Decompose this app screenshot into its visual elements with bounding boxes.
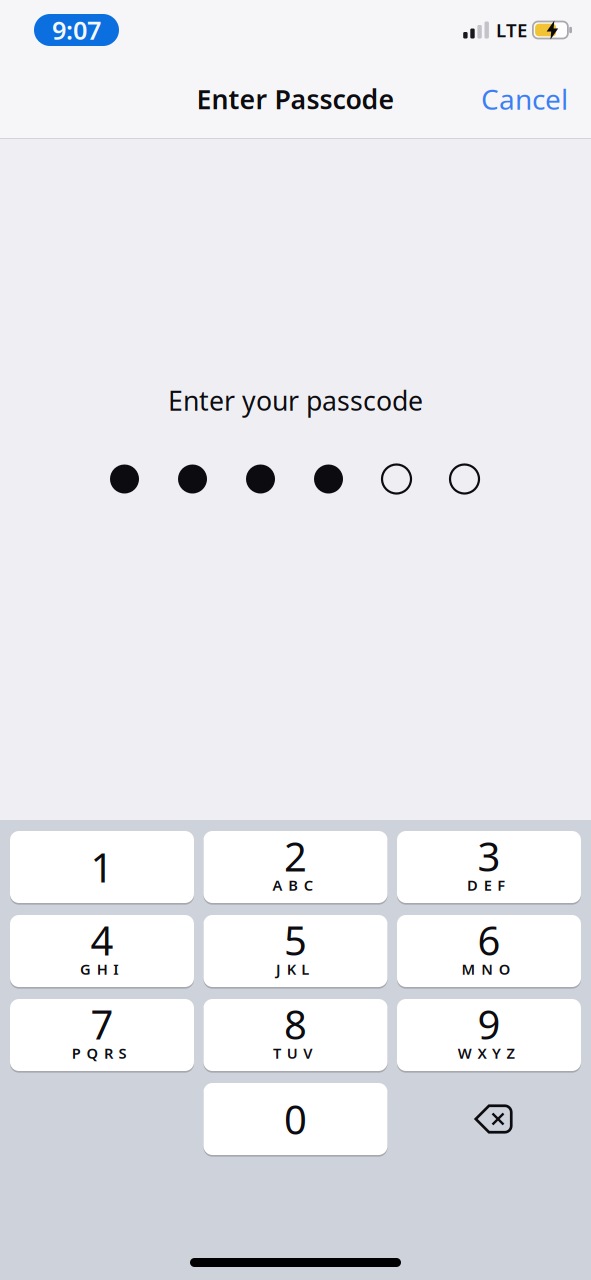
staticText: DEF bbox=[467, 875, 505, 895]
button[interactable]: 2 bbox=[203, 831, 387, 903]
staticText: 3 bbox=[477, 829, 500, 882]
button[interactable]: 0 bbox=[203, 1083, 387, 1155]
staticText: Enter your passcode bbox=[168, 383, 423, 418]
staticText: 6 bbox=[477, 913, 500, 966]
staticText: 5 bbox=[284, 913, 307, 966]
staticText: ABC bbox=[273, 875, 313, 895]
staticText: 9 bbox=[477, 997, 500, 1050]
staticText: PQRS bbox=[72, 1043, 127, 1063]
button[interactable]: 7 bbox=[10, 999, 194, 1071]
button[interactable]: Delete bbox=[397, 1083, 581, 1155]
button[interactable]: 1 bbox=[10, 831, 194, 903]
button[interactable]: 6 bbox=[397, 915, 581, 987]
staticText: 8 bbox=[284, 997, 307, 1050]
staticText: GHI bbox=[80, 959, 118, 979]
staticText: WXYZ bbox=[458, 1043, 515, 1063]
button[interactable]: 5 bbox=[203, 915, 387, 987]
staticText: JKL bbox=[276, 959, 309, 979]
staticText: MNO bbox=[462, 959, 511, 979]
staticText: Enter Passcode bbox=[196, 81, 394, 117]
staticText: 9:07 bbox=[52, 13, 101, 47]
staticText: 2 bbox=[284, 829, 307, 882]
staticText: Cancel bbox=[481, 80, 568, 118]
staticText: 0 bbox=[284, 1092, 307, 1145]
button[interactable]: 4 bbox=[10, 915, 194, 987]
staticText: 1 bbox=[90, 840, 113, 893]
staticText: 4 bbox=[90, 913, 113, 966]
staticText: 7 bbox=[90, 997, 113, 1050]
staticText: LTE bbox=[496, 18, 527, 42]
button[interactable]: 8 bbox=[203, 999, 387, 1071]
button[interactable]: 9 bbox=[397, 999, 581, 1071]
staticText: TUV bbox=[273, 1043, 312, 1063]
button[interactable]: Cancel bbox=[472, 71, 577, 127]
button[interactable]: 3 bbox=[397, 831, 581, 903]
